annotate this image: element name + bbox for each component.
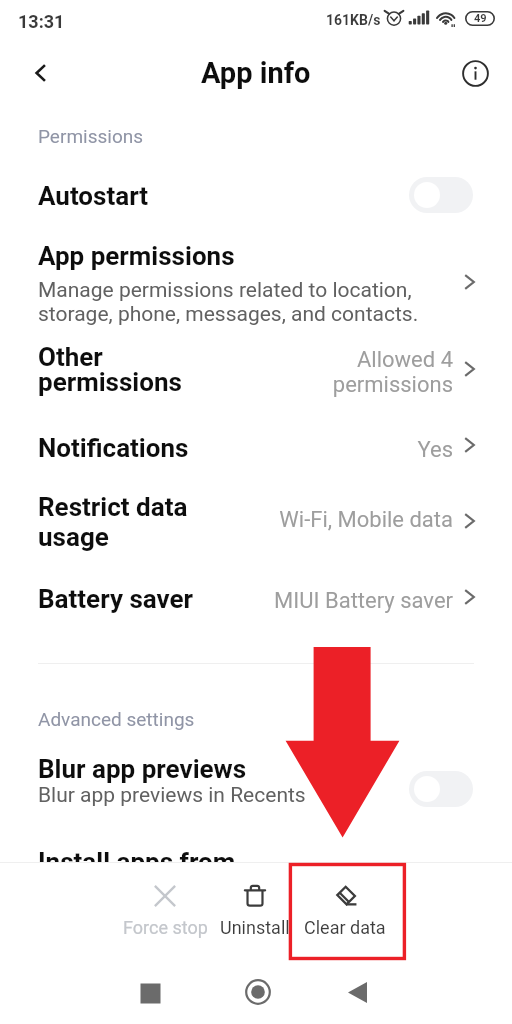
button[interactable]: Clear data bbox=[293, 885, 397, 938]
staticText: 13:31 bbox=[18, 11, 65, 32]
button[interactable]: Battery saver bbox=[0, 576, 512, 634]
staticText: permissions bbox=[273, 372, 453, 398]
staticText: Wi-Fi, Mobile data bbox=[233, 507, 453, 533]
staticText: MIUI Battery saver bbox=[233, 588, 453, 614]
staticText: Clear data bbox=[304, 917, 386, 938]
button[interactable]: App details bbox=[450, 48, 500, 98]
button[interactable]: Home bbox=[245, 979, 271, 1005]
staticText: Blur app previews in Recents bbox=[38, 783, 306, 808]
button[interactable]: Blur app previews bbox=[0, 745, 512, 815]
staticText: Uninstall bbox=[220, 917, 290, 938]
staticText: Restrict data bbox=[38, 492, 188, 522]
button[interactable]: App permissions bbox=[0, 228, 512, 328]
staticText: permissions bbox=[38, 367, 182, 397]
staticText: Install apps from bbox=[38, 847, 236, 877]
staticText: usage bbox=[38, 522, 109, 552]
button[interactable]: Notifications bbox=[0, 424, 512, 482]
button[interactable]: Restrict data bbox=[0, 484, 512, 562]
staticText: Autostart bbox=[38, 181, 149, 211]
staticText: Notifications bbox=[38, 433, 189, 463]
staticText: Permissions bbox=[38, 125, 144, 147]
staticText: App info bbox=[201, 56, 311, 90]
staticText: Advanced settings bbox=[38, 708, 195, 730]
button[interactable]: Toggle bbox=[409, 177, 473, 213]
staticText: 49 bbox=[474, 12, 487, 25]
button[interactable]: Uninstall bbox=[203, 885, 307, 938]
button[interactable]: Recents bbox=[140, 983, 161, 1004]
staticText: Allowed 4 bbox=[273, 347, 453, 373]
staticText: storage, phone, messages, and contacts. bbox=[38, 302, 419, 327]
button[interactable]: Other bbox=[0, 332, 512, 410]
staticText: Battery saver bbox=[38, 584, 194, 614]
button[interactable]: Toggle bbox=[409, 771, 473, 807]
staticText: App permissions bbox=[38, 241, 235, 271]
staticText: Force stop bbox=[123, 917, 208, 938]
staticText: Manage permissions related to location, bbox=[38, 278, 412, 303]
staticText: 161KB/s bbox=[326, 12, 381, 28]
button[interactable]: Autostart bbox=[0, 160, 512, 222]
button[interactable]: Back bbox=[348, 982, 367, 1003]
staticText: Yes bbox=[273, 437, 453, 463]
button[interactable]: Force stop bbox=[113, 885, 217, 938]
staticText: Other bbox=[38, 342, 103, 372]
staticText: Blur app previews bbox=[38, 754, 247, 784]
button[interactable]: Back bbox=[14, 46, 68, 100]
